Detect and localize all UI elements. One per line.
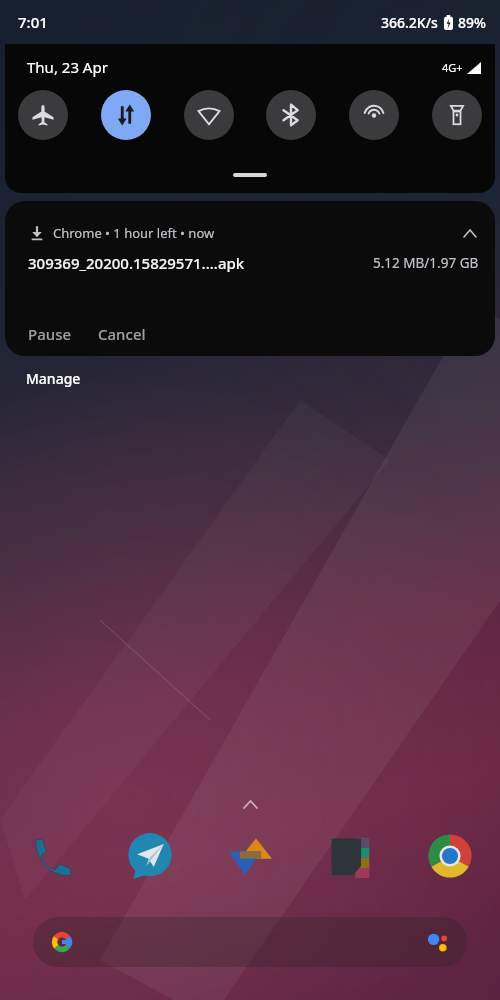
button[interactable]: App drawer: [238, 796, 262, 812]
button[interactable]: Flashlight: [432, 90, 482, 140]
button[interactable]: Notes: [322, 828, 378, 884]
button[interactable]: Hotspot: [349, 90, 399, 140]
button[interactable]: [233, 173, 267, 177]
button[interactable]: Wi-Fi: [184, 90, 234, 140]
staticText: 309369_20200.15829571....apk: [28, 253, 245, 273]
button[interactable]: [33, 917, 467, 967]
button[interactable]: Phone: [22, 828, 78, 884]
staticText: Pause: [28, 324, 72, 344]
staticText: Cancel: [98, 324, 146, 344]
button[interactable]: Chrome: [422, 828, 478, 884]
button[interactable]: Collapse: [459, 222, 481, 244]
staticText: Manage: [26, 369, 81, 388]
button[interactable]: Chrome • 1 hour left • now: [5, 201, 495, 356]
button[interactable]: Telegram: [122, 828, 178, 884]
button[interactable]: Airplane mode: [18, 90, 68, 140]
staticText: Chrome • 1 hour left • now: [53, 224, 215, 242]
staticText: 366.2K/s: [381, 13, 438, 32]
staticText: 89%: [458, 13, 486, 32]
button[interactable]: Bluetooth: [266, 90, 316, 140]
staticText: Thu, 23 Apr: [27, 57, 108, 77]
staticText: 7:01: [18, 12, 48, 32]
staticText: 5.12 MB/1.97 GB: [373, 254, 479, 272]
staticText: 4G+: [442, 60, 463, 75]
button[interactable]: Mobile data: [101, 90, 151, 140]
button[interactable]: Cancel: [85, 316, 159, 352]
button[interactable]: Pause: [15, 316, 85, 352]
button[interactable]: Files: [222, 828, 278, 884]
button[interactable]: Manage: [18, 364, 89, 393]
